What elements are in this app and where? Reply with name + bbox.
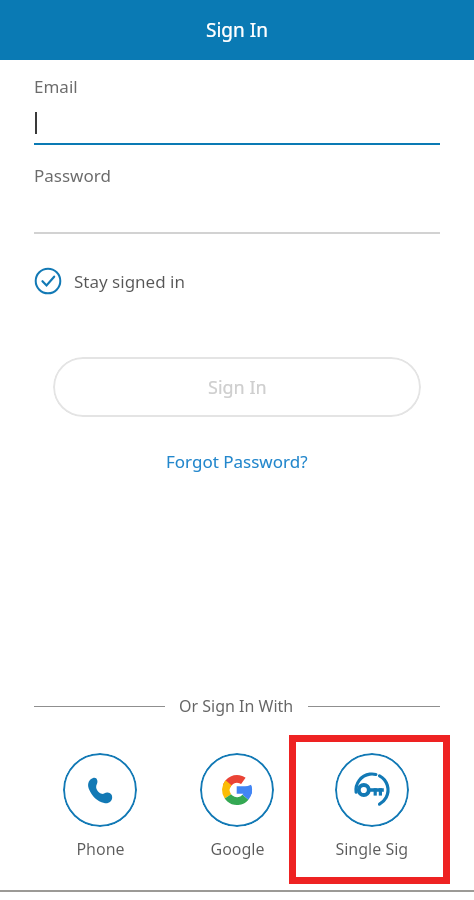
button[interactable]: Forgot Password? [158,446,316,477]
staticText: Email [34,75,78,98]
button[interactable]: Sign in with Google [200,753,274,860]
staticText: Single Sign On [335,838,409,860]
staticText: Phone [76,838,125,860]
button[interactable]: Stay signed in [34,265,185,297]
staticText: Stay signed in [74,270,185,293]
staticText: Sign In [208,375,267,400]
staticText: Password [34,164,111,187]
button[interactable]: Password [34,164,440,234]
staticText: Google [210,838,265,860]
staticText: Or Sign In With [179,695,294,717]
staticText: Sign In [206,17,268,43]
staticText: Forgot Password? [166,450,308,473]
button[interactable]: Sign In [53,357,421,417]
button[interactable]: Email [34,75,440,145]
button[interactable]: Sign in with Phone [63,753,137,860]
button[interactable]: Single Sign On [335,753,409,860]
